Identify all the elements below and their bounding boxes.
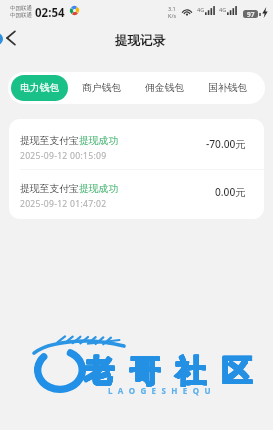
staticText: 3.1 (168, 5, 176, 12)
staticText: 老哥社区 (76, 352, 260, 390)
staticText: 老哥社区 (76, 353, 260, 391)
staticText: 商户钱包 (82, 82, 122, 94)
staticText: LAOGESHEQU (108, 385, 216, 396)
button[interactable]: 佣金钱包 (138, 76, 192, 100)
staticText: 2025-09-12 01:47:02 (20, 198, 107, 210)
staticText: 2025-09-12 00:15:09 (20, 150, 107, 162)
staticText: 提现至支付宝 (20, 135, 79, 147)
staticText: 提现成功 (79, 183, 119, 195)
staticText: 4G (197, 6, 205, 13)
staticText: 提现成功 (79, 135, 119, 147)
staticText: 老哥社区 (75, 352, 259, 390)
staticText: K/s (168, 12, 177, 19)
staticText: 0.00元 (215, 185, 246, 199)
button[interactable]: 电力钱包 (11, 75, 68, 101)
staticText: -70.00元 (206, 137, 246, 151)
staticText: 提现至支付宝 (20, 183, 79, 195)
staticText: 老哥社区 (76, 353, 260, 391)
button[interactable]: Back (0, 22, 27, 54)
button[interactable]: 商户钱包 (75, 76, 129, 100)
staticText: 97 (247, 10, 255, 18)
staticText: 中国联通 (10, 12, 32, 19)
staticText: 4G (219, 6, 227, 13)
staticText: 中国联通 (10, 5, 32, 12)
staticText: 国补钱包 (208, 82, 248, 94)
staticText: 提现记录 (115, 33, 165, 49)
staticText: 老哥社区 (75, 353, 259, 391)
staticText: 老哥社区 (75, 353, 259, 391)
button[interactable]: 提现至支付宝 (9, 119, 264, 169)
staticText: 电力钱包 (20, 82, 60, 94)
button[interactable]: 国补钱包 (201, 76, 255, 100)
staticText: 老哥社区 (76, 352, 260, 390)
staticText: 佣金钱包 (145, 82, 185, 94)
staticText: 老哥社区 (76, 353, 260, 391)
staticText: 老哥社区 (76, 353, 260, 391)
button[interactable]: 提现至支付宝 (9, 170, 264, 219)
staticText: 02:54 (35, 5, 65, 21)
